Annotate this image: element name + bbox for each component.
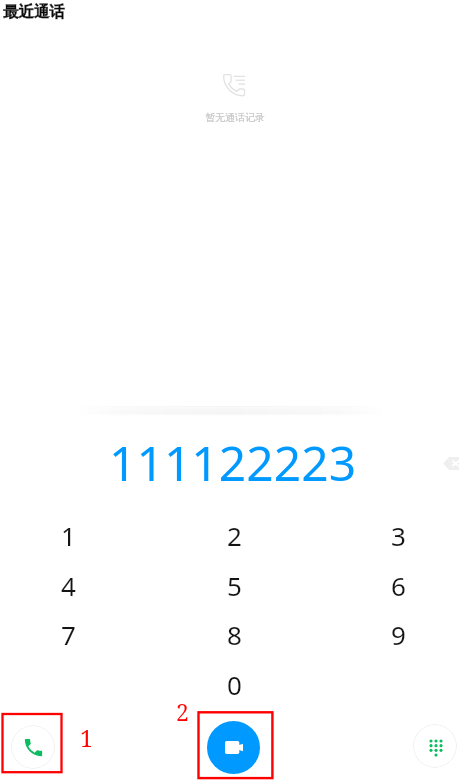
staticText: 111122223	[109, 430, 357, 495]
button[interactable]: Video call	[207, 721, 260, 774]
button[interactable]: Backspace	[426, 443, 459, 483]
staticText: 4	[61, 568, 76, 603]
staticText: 0	[227, 667, 242, 702]
button[interactable]: 9	[364, 609, 432, 659]
staticText: 7	[61, 617, 76, 652]
staticText: 1	[61, 518, 76, 553]
staticText: 2	[227, 518, 242, 553]
button[interactable]: Dialpad	[413, 724, 457, 768]
staticText: 暂无通话记录	[205, 111, 265, 124]
staticText: 1	[80, 722, 93, 753]
staticText: 最近通话	[3, 2, 65, 22]
button[interactable]: 0	[200, 659, 268, 709]
staticText: 6	[391, 568, 406, 603]
staticText: 3	[391, 518, 406, 553]
staticText: 5	[227, 568, 242, 603]
button[interactable]: 1	[34, 510, 102, 560]
button[interactable]: 8	[200, 609, 268, 659]
button[interactable]: 7	[34, 609, 102, 659]
button[interactable]: Voice call	[11, 725, 55, 769]
button[interactable]: 5	[200, 560, 268, 610]
button[interactable]: 6	[364, 560, 432, 610]
button[interactable]: 3	[364, 510, 432, 560]
button[interactable]: 2	[200, 510, 268, 560]
staticText: 最近通话	[3, 2, 65, 22]
staticText: 9	[391, 617, 406, 652]
button[interactable]: 4	[34, 560, 102, 610]
staticText: 2	[176, 696, 189, 727]
staticText: 8	[227, 617, 242, 652]
